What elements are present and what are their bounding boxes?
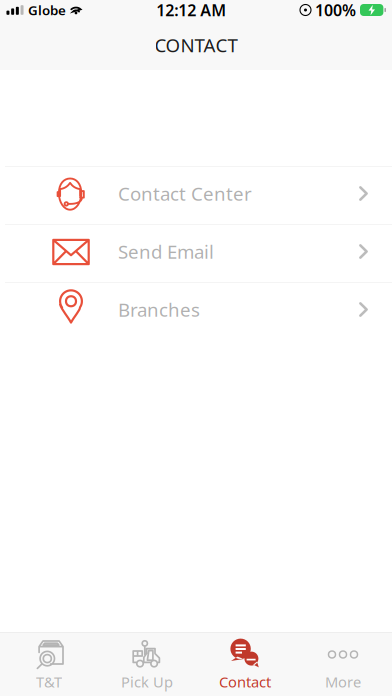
staticText: T&T xyxy=(36,672,62,691)
button[interactable]: Branches xyxy=(0,283,392,340)
button[interactable]: Contact xyxy=(196,633,294,696)
button[interactable]: Pick Up xyxy=(98,633,196,696)
staticText: More xyxy=(325,672,361,691)
button[interactable]: Send Email xyxy=(0,225,392,282)
staticText: 12:12 AM xyxy=(156,0,226,21)
button[interactable]: Contact Center xyxy=(0,167,392,224)
button[interactable]: More xyxy=(294,633,392,696)
staticText: CONTACT xyxy=(154,33,237,57)
staticText: Branches xyxy=(118,297,200,322)
staticText: Send Email xyxy=(118,239,214,264)
staticText: Contact Center xyxy=(118,181,252,206)
staticText: Contact xyxy=(219,672,271,691)
staticText: Globe xyxy=(28,1,66,19)
staticText: Pick Up xyxy=(121,672,173,691)
staticText: 100% xyxy=(315,0,356,21)
button[interactable]: T&T xyxy=(0,633,98,696)
